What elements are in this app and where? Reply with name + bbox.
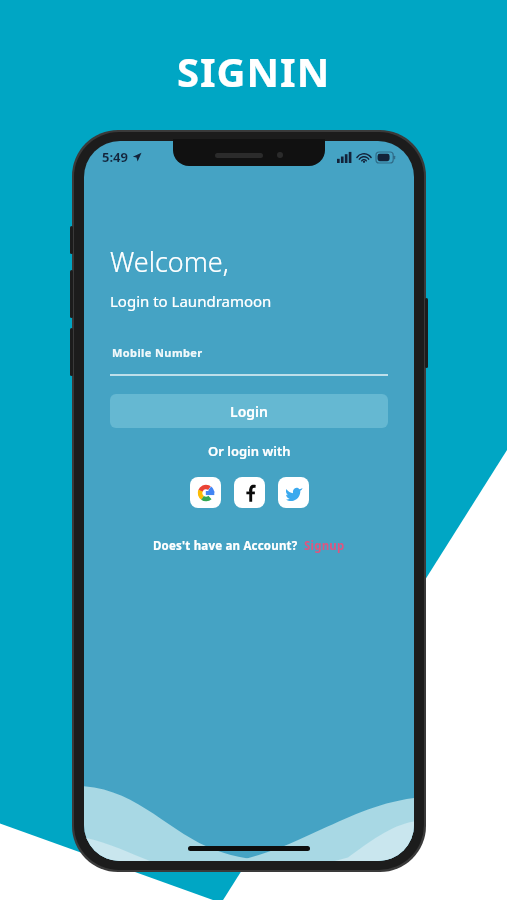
button[interactable]: Sign in with Facebook	[234, 477, 265, 508]
button[interactable]: Sign in with Google	[190, 477, 221, 508]
button[interactable]: Sign in with Twitter	[278, 477, 309, 508]
button[interactable]: Does't have an Account?	[110, 538, 388, 554]
staticText: Login	[230, 402, 268, 421]
staticText: SIGNIN	[177, 44, 331, 98]
staticText: Welcome,	[110, 243, 229, 280]
staticText: 5:49	[102, 148, 128, 166]
staticText: Signup	[304, 538, 345, 554]
button[interactable]: Mobile Number	[110, 345, 388, 376]
staticText: Does't have an Account?	[153, 538, 298, 554]
staticText: Login to Laundramoon	[110, 291, 272, 311]
staticText: Mobile Number	[112, 345, 203, 360]
button[interactable]: Login	[110, 394, 388, 428]
staticText: Or login with	[208, 442, 291, 460]
